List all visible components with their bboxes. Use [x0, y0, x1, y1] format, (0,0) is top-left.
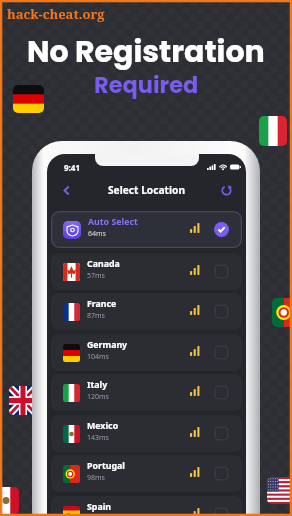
staticText: 104ms	[87, 352, 109, 362]
staticText: Auto Select	[88, 216, 138, 228]
button[interactable]: Germany	[51, 334, 242, 371]
button[interactable]: France	[51, 293, 242, 330]
staticText: hack-cheat.org	[7, 5, 105, 23]
staticText: Spain	[87, 501, 112, 513]
button[interactable]: Back	[58, 182, 74, 198]
button[interactable]: Spain	[51, 496, 242, 516]
staticText: Mexico	[87, 420, 119, 432]
staticText: Italy	[87, 379, 108, 391]
button[interactable]: Canada	[51, 253, 242, 290]
button[interactable]: Portugal	[51, 455, 242, 492]
button[interactable]: Mexico	[51, 415, 242, 452]
staticText: Portugal	[87, 460, 125, 472]
staticText: 120ms	[87, 392, 109, 402]
staticText: 87ms	[87, 311, 105, 321]
button[interactable]: Refresh	[218, 182, 234, 198]
staticText: 57ms	[87, 271, 105, 281]
staticText: Select Location	[108, 183, 186, 197]
button[interactable]: Italy	[51, 374, 242, 411]
staticText: No Registration	[27, 31, 265, 73]
staticText: 64ms	[88, 229, 106, 239]
staticText: 98ms	[87, 473, 105, 483]
staticText: Required	[94, 69, 199, 100]
staticText: 143ms	[87, 433, 109, 443]
staticText: France	[87, 298, 117, 310]
staticText: 9:41	[64, 162, 80, 173]
button[interactable]: Auto Select	[51, 211, 242, 248]
staticText: Canada	[87, 258, 120, 270]
staticText: Germany	[87, 339, 128, 351]
